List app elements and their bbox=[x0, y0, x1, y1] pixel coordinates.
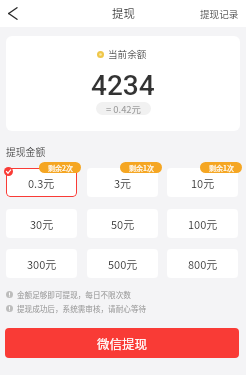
staticText: = 0.42元 bbox=[106, 102, 141, 115]
button[interactable]: 800元 bbox=[167, 249, 238, 278]
button[interactable]: 500元 bbox=[87, 249, 158, 278]
staticText: 800元 bbox=[188, 256, 218, 272]
staticText: 50元 bbox=[111, 216, 135, 232]
staticText: 提现记录 bbox=[200, 7, 239, 21]
staticText: 剩余1次 bbox=[209, 163, 234, 173]
button[interactable]: 0.3元 bbox=[6, 168, 77, 197]
staticText: 提现成功后，系统需审核，请耐心等待 bbox=[17, 303, 147, 314]
button[interactable]: 30元 bbox=[6, 209, 77, 238]
staticText: 4234 bbox=[91, 69, 155, 102]
button[interactable]: 100元 bbox=[167, 209, 238, 238]
staticText: 微信提现 bbox=[97, 334, 148, 352]
staticText: 剩余1次 bbox=[129, 163, 154, 173]
staticText: 100元 bbox=[188, 216, 218, 232]
button[interactable]: 提现记录 bbox=[192, 2, 246, 26]
staticText: 提现 bbox=[112, 5, 135, 22]
staticText: 剩余2次 bbox=[48, 163, 73, 173]
staticText: 提现金额 bbox=[6, 145, 46, 159]
staticText: 10元 bbox=[191, 175, 215, 191]
staticText: 300元 bbox=[27, 256, 57, 272]
button[interactable]: 3元 bbox=[87, 168, 158, 197]
staticText: 3元 bbox=[114, 175, 132, 191]
button[interactable]: 50元 bbox=[87, 209, 158, 238]
staticText: 当前余额 bbox=[108, 47, 147, 61]
staticText: 500元 bbox=[108, 256, 138, 272]
button[interactable]: 10元 bbox=[167, 168, 238, 197]
button[interactable]: 300元 bbox=[6, 249, 77, 278]
staticText: 30元 bbox=[30, 216, 54, 232]
staticText: 0.3元 bbox=[28, 175, 55, 191]
staticText: 金额足够即可提现，每日不限次数 bbox=[17, 289, 131, 300]
button[interactable]: Back bbox=[0, 0, 24, 27]
button[interactable]: 微信提现 bbox=[5, 328, 239, 358]
